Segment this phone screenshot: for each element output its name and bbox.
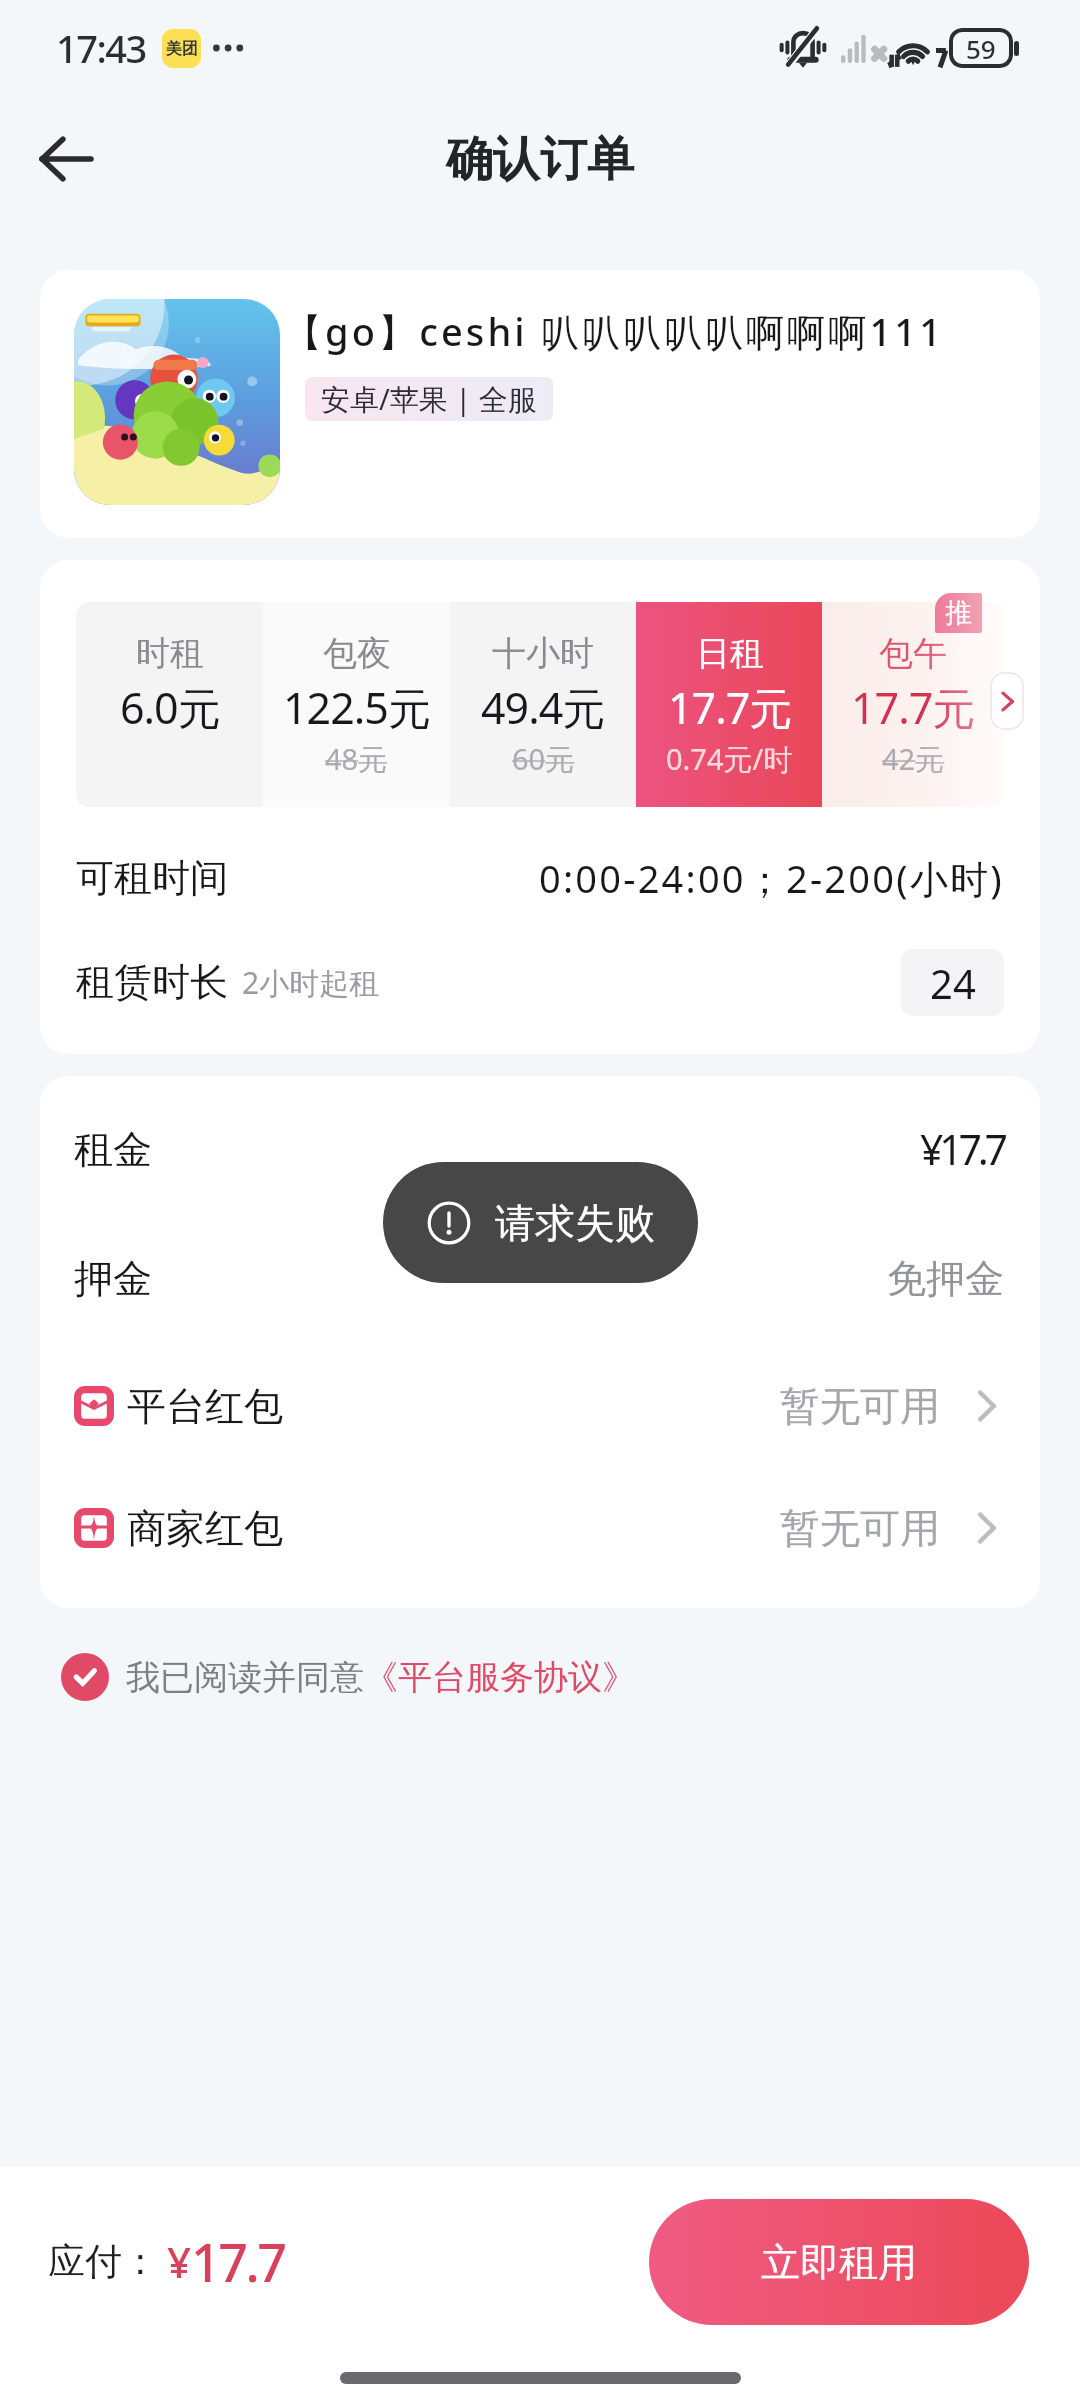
staticText: 暂无可用	[780, 1381, 940, 1431]
staticText: 可租时间	[76, 854, 228, 902]
staticText: 我已阅读并同意	[126, 1656, 364, 1699]
button[interactable]: 24	[901, 949, 1004, 1016]
staticText: 122.5元	[283, 678, 430, 737]
staticText: 包夜	[323, 632, 391, 675]
staticText: 押金	[74, 1254, 152, 1303]
staticText: 请求失败	[495, 1198, 655, 1248]
staticText: 平台红包	[127, 1382, 283, 1431]
staticText: 6.0元	[120, 678, 220, 737]
staticText: ¥17.7	[920, 1121, 1004, 1177]
staticText: 免押金	[887, 1254, 1004, 1303]
staticText: 0.74元/时	[666, 739, 793, 779]
button[interactable]: 日租	[636, 602, 822, 807]
button[interactable]: Back	[24, 117, 108, 201]
staticText: 日租	[696, 632, 764, 675]
staticText: 17.7	[191, 2226, 285, 2297]
staticText: 《平台服务协议》	[364, 1656, 636, 1699]
button[interactable]: More plans	[990, 672, 1024, 730]
staticText: 租赁时长	[76, 958, 228, 1006]
staticText: 48元	[325, 739, 388, 779]
staticText: 确认订单	[446, 130, 634, 189]
staticText: 60元	[512, 739, 575, 779]
staticText: 17.7元	[851, 678, 975, 737]
staticText: 包午	[879, 632, 947, 675]
button[interactable]: 【go】ceshi 叭叭叭叭叭啊啊啊111	[40, 270, 1040, 538]
staticText: 安卓/苹果 | 全服	[321, 379, 537, 419]
staticText: ¥	[167, 2233, 191, 2290]
staticText: 美团	[166, 39, 198, 59]
button[interactable]: 时租	[76, 602, 263, 807]
button[interactable]: 我已阅读并同意	[61, 1653, 636, 1701]
staticText: 暂无可用	[780, 1503, 940, 1553]
staticText: 租金	[74, 1125, 152, 1174]
button[interactable]: 十小时	[450, 602, 636, 807]
staticText: 17:43	[56, 22, 146, 74]
staticText: 时租	[136, 632, 204, 675]
staticText: 42元	[882, 739, 945, 779]
staticText: 17.7元	[668, 678, 792, 737]
staticText: 应付：	[48, 2238, 159, 2285]
button[interactable]: 商家红包	[74, 1467, 1004, 1589]
staticText: 立即租用	[761, 2238, 917, 2287]
staticText: 推	[945, 596, 972, 630]
button[interactable]: 包午	[822, 602, 1004, 807]
staticText: 【go】ceshi 叭叭叭叭叭啊啊啊111	[284, 305, 944, 357]
staticText: 0:00-24:00；2-200(小时)	[539, 852, 1004, 904]
staticText: 24	[930, 956, 976, 1010]
staticText: 49.4元	[481, 678, 605, 737]
button[interactable]: 立即租用	[649, 2199, 1029, 2325]
button[interactable]: 平台红包	[74, 1345, 1004, 1467]
button[interactable]: 包夜	[263, 602, 450, 807]
staticText: 商家红包	[127, 1504, 283, 1553]
staticText: 59	[966, 31, 996, 66]
staticText: 十小时	[492, 632, 594, 675]
staticText: 2小时起租	[242, 962, 380, 1003]
